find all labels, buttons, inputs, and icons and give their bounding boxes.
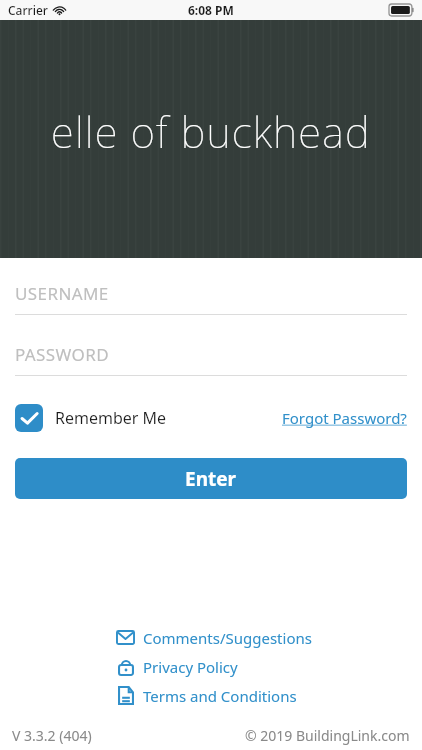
button[interactable]: Remember Me [15, 404, 167, 432]
staticText: Remember Me [55, 407, 167, 429]
button[interactable]: Terms and Conditions [115, 685, 297, 706]
button[interactable]: Privacy Policy [115, 656, 238, 677]
staticText: USERNAME [15, 282, 109, 305]
staticText: Carrier [8, 2, 48, 18]
staticText: elle of buckhead [51, 103, 371, 160]
button[interactable]: Forgot Password? [282, 408, 407, 428]
button[interactable]: PASSWORD [15, 343, 407, 376]
staticText: Enter [185, 466, 237, 492]
staticText: V 3.3.2 (404) [12, 726, 92, 745]
staticText: © 2019 BuildingLink.com [245, 726, 410, 745]
button[interactable]: Comments/Suggestions [115, 627, 312, 648]
button[interactable]: Enter [15, 458, 407, 499]
staticText: Privacy Policy [143, 657, 238, 677]
staticText: PASSWORD [15, 343, 110, 366]
staticText: Comments/Suggestions [143, 628, 312, 648]
button[interactable]: USERNAME [15, 282, 407, 315]
staticText: Forgot Password? [282, 408, 407, 428]
staticText: Terms and Conditions [143, 686, 297, 706]
staticText: 6:08 PM [188, 2, 234, 18]
